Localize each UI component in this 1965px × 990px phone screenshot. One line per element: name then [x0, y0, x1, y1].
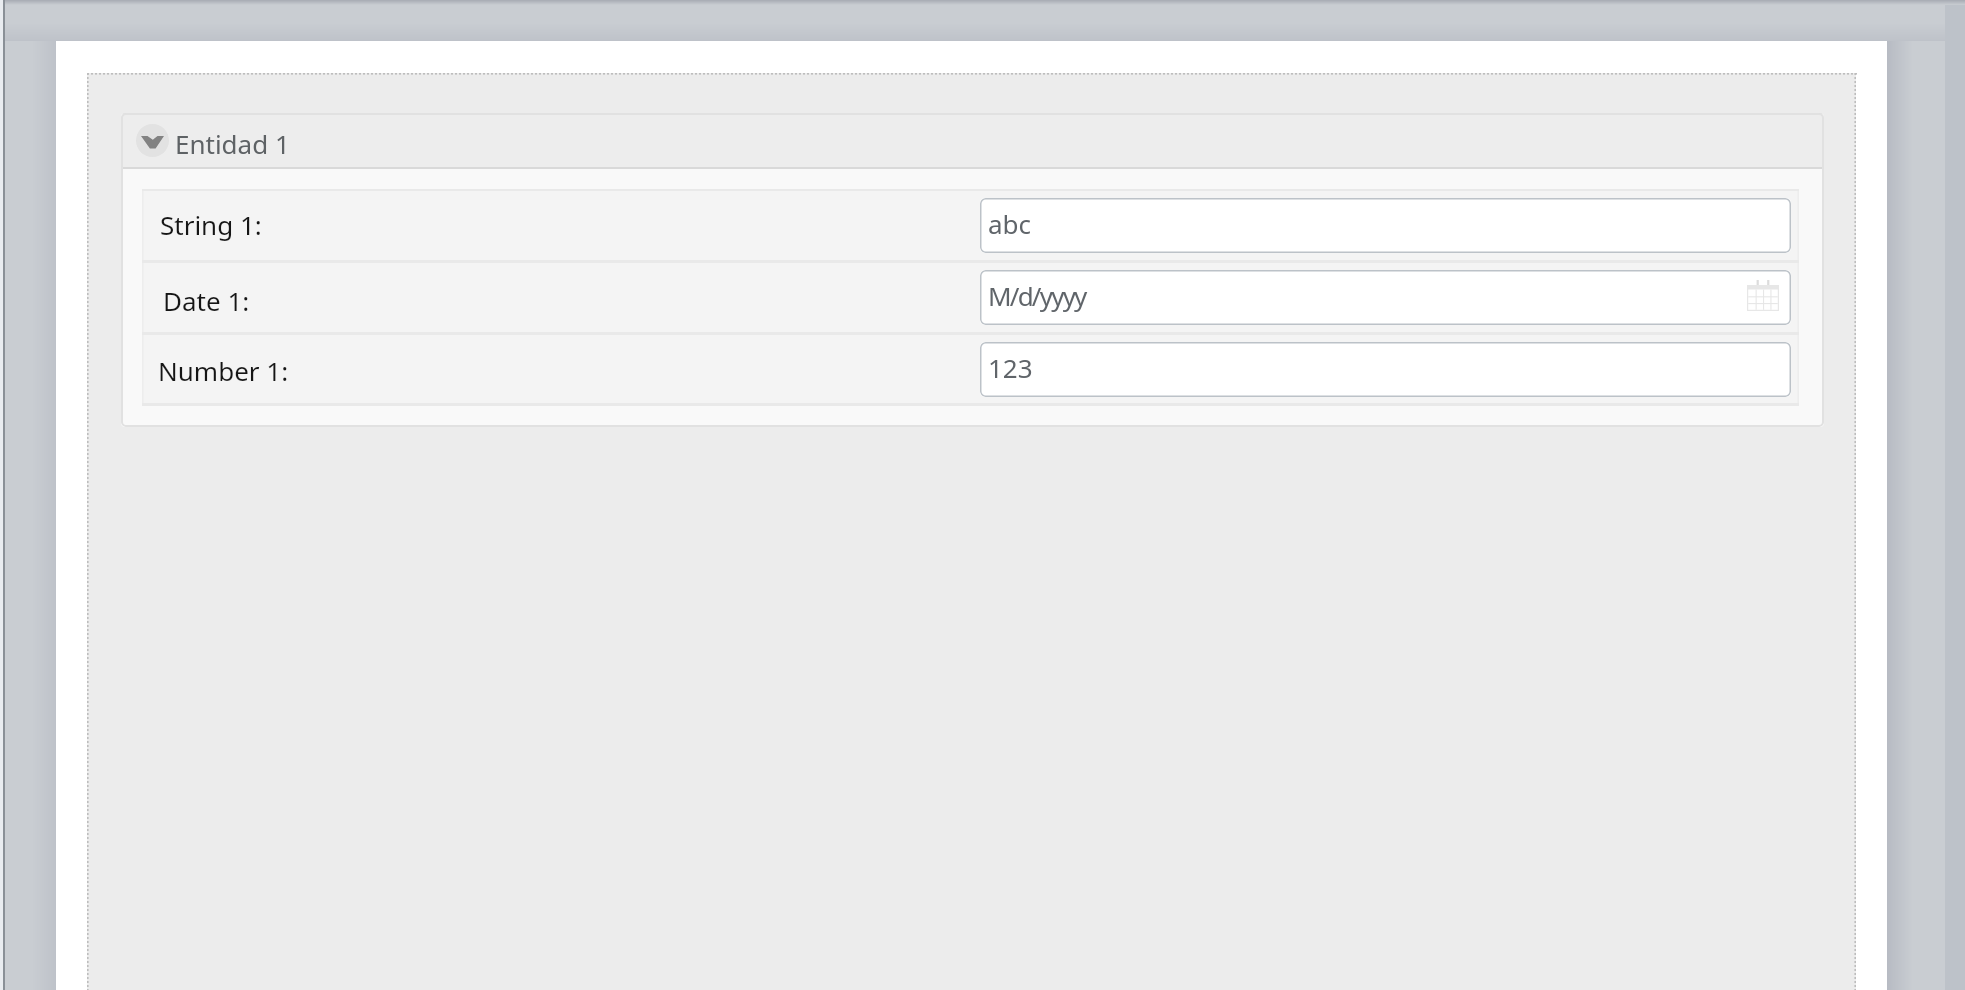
button[interactable]: Number 1: — [142, 335, 1799, 403]
button[interactable]: Pick date — [1747, 280, 1779, 311]
button[interactable]: Collapse Entidad 1 — [121, 113, 1824, 169]
button[interactable]: Date 1: — [142, 263, 1799, 332]
staticText: abc — [988, 206, 1032, 241]
button[interactable]: Collapse Entidad 1 — [136, 124, 169, 157]
button[interactable]: String 1: — [142, 191, 1799, 260]
staticText: M/d/yyyy — [988, 278, 1086, 313]
staticText: String 1: — [160, 207, 262, 242]
staticText: Number 1: — [158, 353, 289, 388]
staticText: Date 1: — [163, 283, 250, 318]
staticText: 123 — [988, 350, 1033, 385]
staticText: Entidad 1 — [175, 126, 290, 161]
